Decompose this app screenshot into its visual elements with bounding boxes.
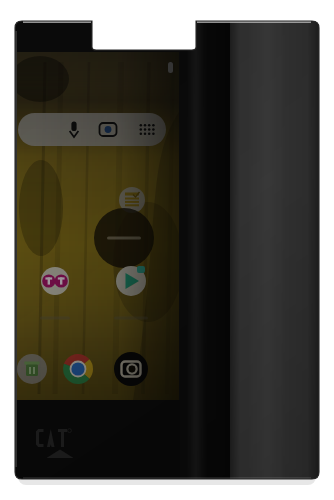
button[interactable]: CAT rugged phone product photo [0,0,334,500]
